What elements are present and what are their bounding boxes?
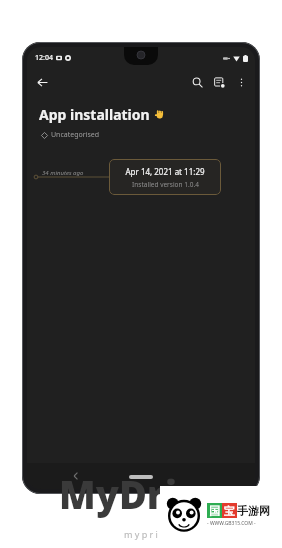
staticText: 国: [209, 504, 220, 518]
staticText: 宝: [224, 504, 235, 518]
button[interactable]: Home: [128, 472, 154, 481]
staticText: MyDrive: [59, 468, 224, 520]
button[interactable]: Back: [31, 71, 53, 93]
staticText: App installation: [39, 105, 150, 124]
button[interactable]: Apr 14, 2021 at 11:29: [109, 159, 221, 195]
button[interactable]: More options: [230, 71, 252, 93]
staticText: m y p r i: [124, 528, 158, 540]
button[interactable]: Filter: [208, 71, 230, 93]
staticText: Uncategorised: [51, 130, 100, 140]
button[interactable]: Search: [186, 71, 208, 93]
staticText: 34 minutes ago: [42, 169, 84, 177]
staticText: Installed version 1.0.4: [132, 180, 199, 189]
staticText: 手游网: [237, 504, 270, 518]
button[interactable]: Uncategorised: [40, 129, 101, 141]
staticText: - WWW.GB315.COM -: [207, 520, 256, 527]
staticText: 12:04: [35, 53, 53, 63]
button[interactable]: Back: [67, 467, 85, 485]
staticText: Apr 14, 2021 at 11:29: [125, 166, 205, 177]
